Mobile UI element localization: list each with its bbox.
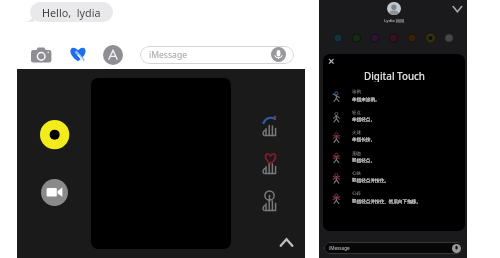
button[interactable]: Record video bbox=[41, 179, 68, 206]
button[interactable]: Digital Touch bbox=[67, 44, 89, 65]
staticText: Hello, lydia bbox=[42, 5, 101, 20]
button[interactable]: Camera bbox=[31, 47, 52, 64]
staticText: iMessage bbox=[149, 49, 188, 61]
staticText: 双指轻点。 bbox=[352, 158, 375, 164]
button[interactable]: App Store bbox=[103, 45, 123, 65]
staticText: 轻点 bbox=[352, 110, 361, 116]
button[interactable]: Contact bbox=[387, 2, 401, 15]
button[interactable] bbox=[140, 46, 294, 64]
staticText: 涂鸦 bbox=[352, 89, 361, 95]
button[interactable] bbox=[324, 242, 463, 254]
staticText: 双指轻点并按住。 bbox=[352, 178, 389, 184]
staticText: Digital Touch bbox=[364, 70, 425, 82]
button[interactable]: Collapse bbox=[450, 2, 465, 16]
staticText: 双指轻点并按住、然后向下拖移。 bbox=[352, 199, 421, 205]
staticText: 心跳 bbox=[352, 171, 361, 177]
button[interactable]: Colour bbox=[40, 120, 69, 149]
button[interactable]: Dictate bbox=[271, 47, 286, 62]
staticText: 亲吻 bbox=[352, 151, 361, 157]
staticText: 单指长按。 bbox=[352, 137, 375, 143]
staticText: iMessage bbox=[329, 245, 350, 251]
staticText: 单指轻点。 bbox=[352, 117, 375, 123]
staticText: Lydia 姐姐 bbox=[384, 17, 405, 23]
button[interactable]: Close bbox=[327, 57, 336, 66]
button[interactable]: Dictate bbox=[452, 244, 461, 253]
staticText: 火球 bbox=[352, 130, 361, 136]
staticText: 心碎 bbox=[352, 191, 361, 197]
button[interactable]: Hello, lydia bbox=[30, 2, 113, 22]
staticText: 单指来涂鸦。 bbox=[352, 97, 380, 103]
